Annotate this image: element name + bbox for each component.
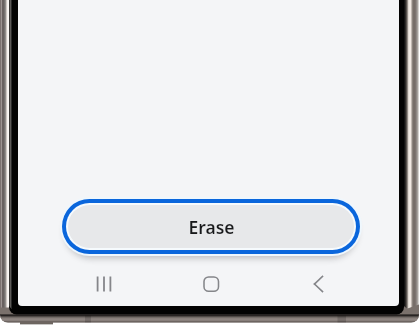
button[interactable]: Back [265, 262, 372, 306]
button[interactable]: Recents [50, 262, 158, 306]
button[interactable]: Home [158, 262, 265, 306]
button[interactable]: Erase [68, 205, 354, 248]
staticText: Erase [188, 215, 235, 239]
